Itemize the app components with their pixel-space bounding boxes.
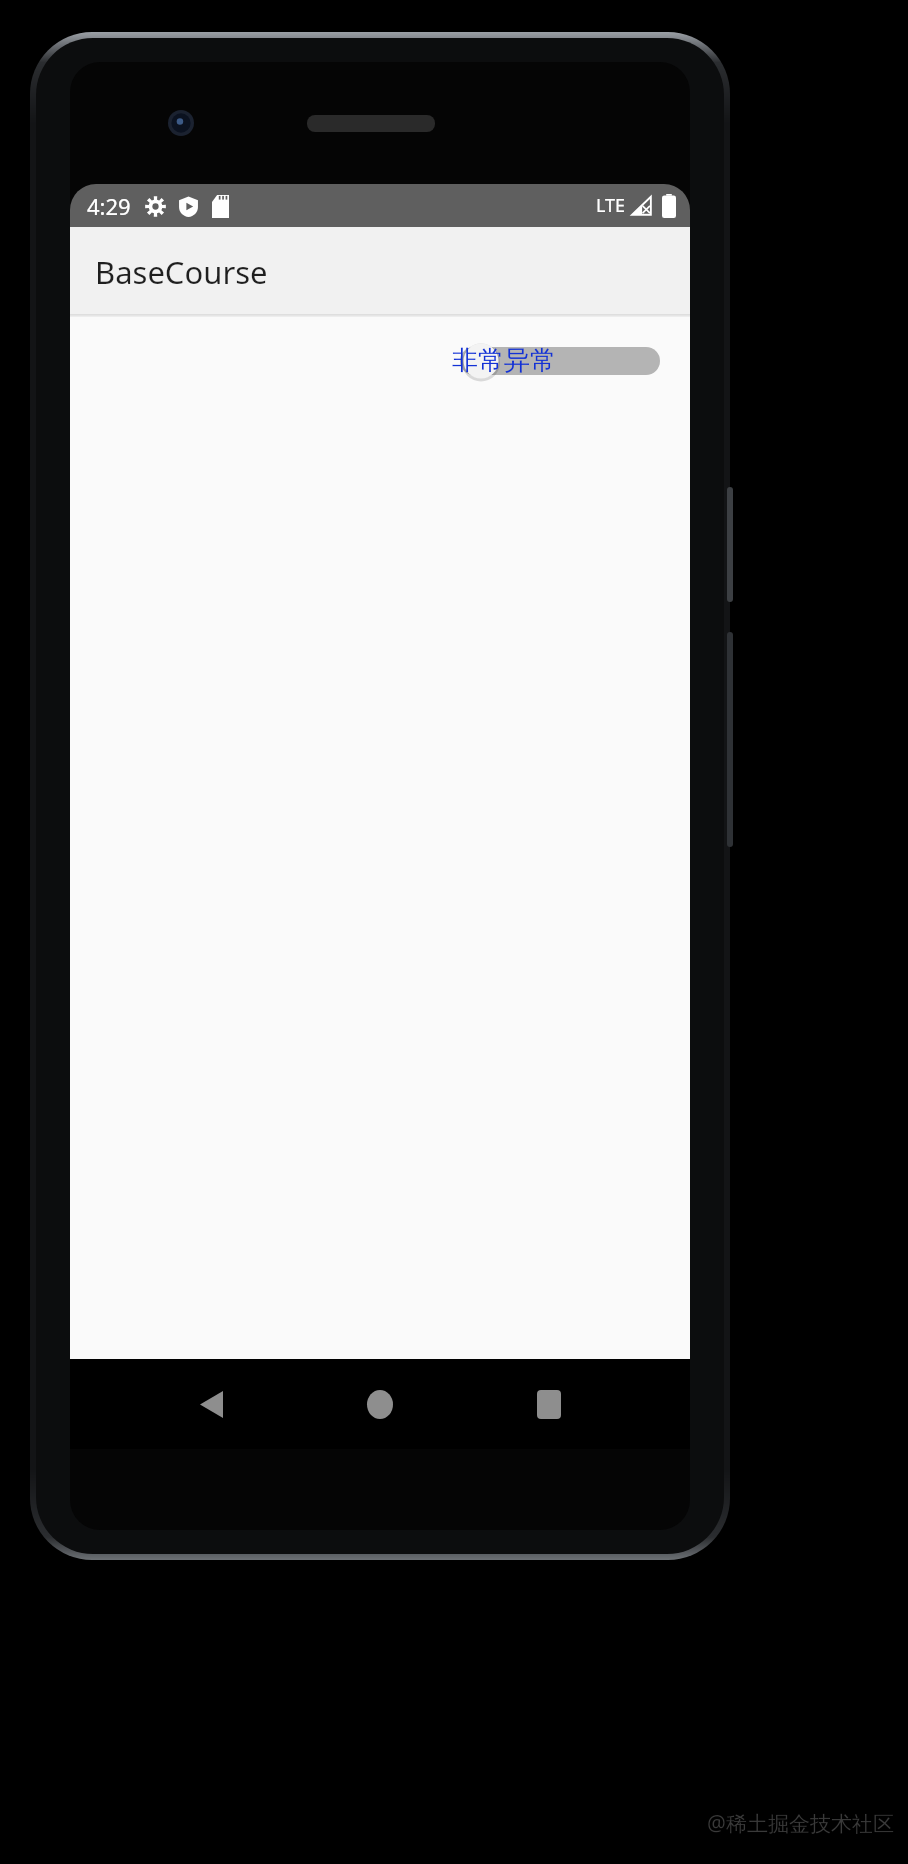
button[interactable]: 非常异常 <box>448 342 660 380</box>
button[interactable]: Back <box>178 1371 244 1437</box>
button[interactable]: Recent apps <box>516 1371 582 1437</box>
staticText: LTE <box>596 193 626 218</box>
staticText: 非常异常 <box>452 344 556 377</box>
staticText: BaseCourse <box>95 251 268 293</box>
staticText: @稀土掘金技术社区 <box>707 1809 894 1838</box>
button[interactable]: Home <box>347 1371 413 1437</box>
staticText: 4:29 <box>87 191 131 221</box>
